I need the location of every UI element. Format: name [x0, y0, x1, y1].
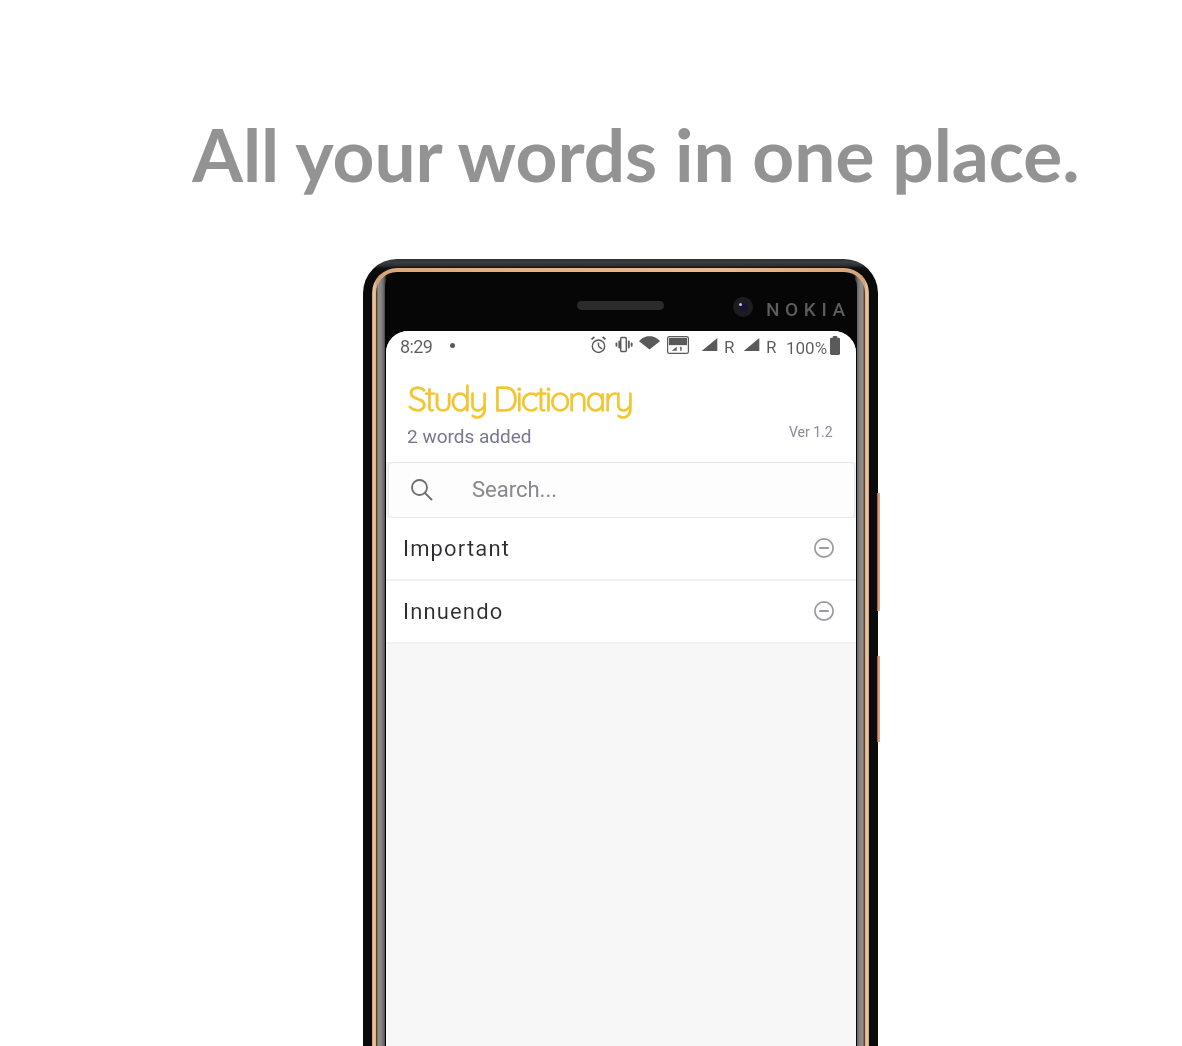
staticText: R	[766, 337, 777, 357]
button[interactable]: Search...	[389, 463, 854, 517]
button[interactable]: Remove Innuendo	[809, 596, 839, 626]
staticText: NOKIA	[766, 298, 851, 320]
staticText: Study Dictionary	[408, 377, 632, 420]
button[interactable]: Innuendo	[386, 581, 856, 642]
staticText: Ver 1.2	[789, 424, 833, 440]
staticText: 8:29	[400, 336, 433, 357]
staticText: 2 words added	[407, 425, 532, 447]
staticText: Important	[403, 536, 511, 562]
staticText: R	[724, 337, 735, 357]
staticText: All your words in one place.	[192, 110, 1080, 198]
button[interactable]: Remove Important	[809, 533, 839, 563]
staticText: 100%	[786, 338, 828, 358]
staticText: Innuendo	[403, 599, 504, 625]
staticText: Search...	[472, 477, 557, 503]
button[interactable]: Important	[386, 518, 856, 579]
